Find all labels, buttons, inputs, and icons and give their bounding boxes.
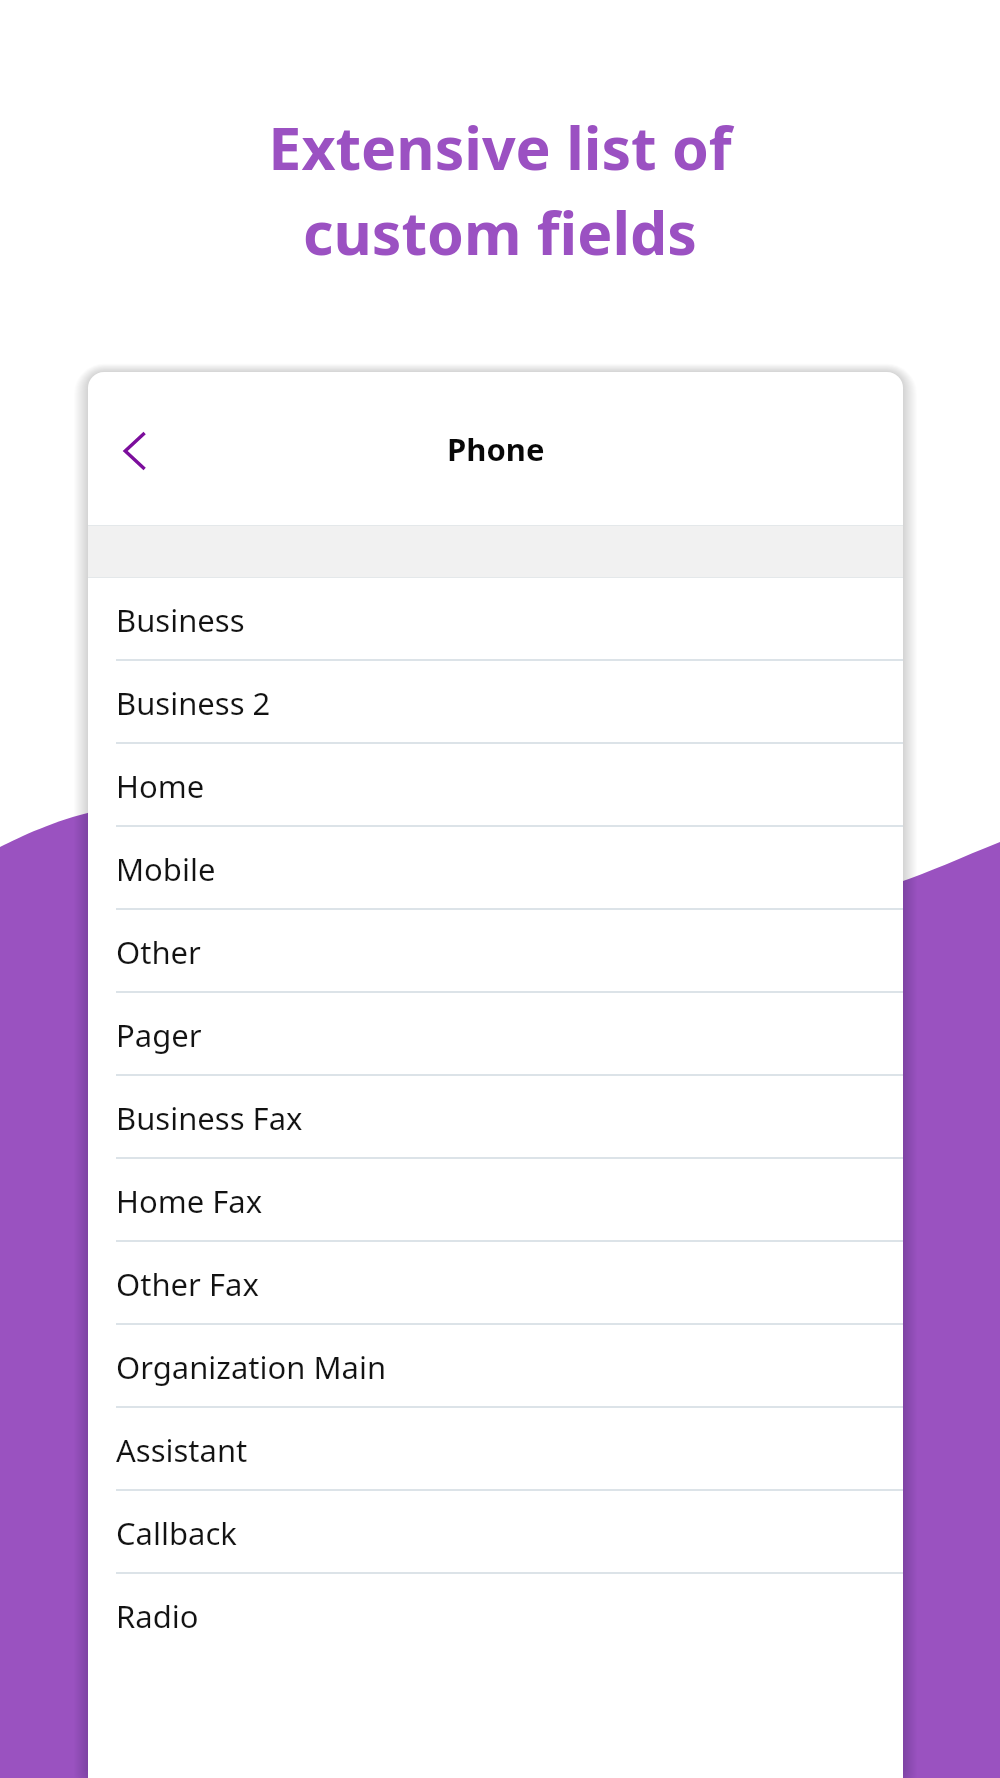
button[interactable]: Other bbox=[88, 910, 903, 993]
staticText: Mobile bbox=[116, 848, 216, 890]
staticText: Organization Main bbox=[116, 1346, 387, 1388]
button[interactable]: Radio bbox=[88, 1574, 903, 1657]
staticText: Pager bbox=[116, 1014, 202, 1056]
staticText: Home bbox=[116, 765, 205, 807]
staticText: Phone bbox=[447, 428, 545, 470]
staticText: Other Fax bbox=[116, 1263, 259, 1305]
button[interactable]: Mobile bbox=[88, 827, 903, 910]
staticText: Assistant bbox=[116, 1429, 248, 1471]
staticText: Other bbox=[116, 931, 201, 973]
button[interactable]: Business bbox=[88, 578, 903, 661]
staticText: Home Fax bbox=[116, 1180, 263, 1222]
staticText: Business bbox=[116, 599, 245, 641]
button[interactable]: Other Fax bbox=[88, 1242, 903, 1325]
staticText: Callback bbox=[116, 1512, 237, 1554]
button[interactable]: Business 2 bbox=[88, 661, 903, 744]
staticText: Business 2 bbox=[116, 682, 271, 724]
button[interactable]: Pager bbox=[88, 993, 903, 1076]
button[interactable]: Callback bbox=[88, 1491, 903, 1574]
button[interactable]: Back bbox=[98, 413, 174, 489]
button[interactable]: Home Fax bbox=[88, 1159, 903, 1242]
button[interactable]: Assistant bbox=[88, 1408, 903, 1491]
staticText: Extensive list of custom fields bbox=[0, 107, 1000, 272]
button[interactable]: Home bbox=[88, 744, 903, 827]
button[interactable]: Business Fax bbox=[88, 1076, 903, 1159]
button[interactable]: Organization Main bbox=[88, 1325, 903, 1408]
staticText: Business Fax bbox=[116, 1097, 303, 1139]
staticText: Radio bbox=[116, 1595, 199, 1637]
